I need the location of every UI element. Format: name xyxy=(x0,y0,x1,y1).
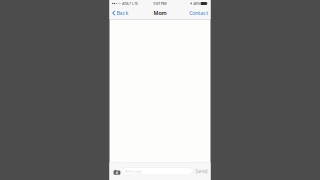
staticText: Mom xyxy=(153,9,166,17)
staticText: 7:07 PM xyxy=(153,1,167,6)
staticText: iMessage xyxy=(124,169,141,174)
button[interactable]: Send xyxy=(193,167,210,176)
staticText: Back xyxy=(117,9,129,17)
staticText: 48% xyxy=(193,1,200,6)
staticText: Contact xyxy=(189,9,208,17)
button[interactable]: Back xyxy=(109,7,131,19)
staticText: AT&T LTE xyxy=(122,1,138,6)
button[interactable]: Contact xyxy=(187,7,210,19)
button[interactable]: Send a photo xyxy=(110,165,122,177)
staticText: Send xyxy=(195,168,207,175)
